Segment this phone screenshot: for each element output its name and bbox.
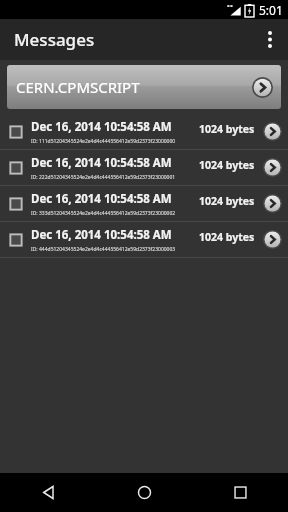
button[interactable]: Select message: [9, 161, 23, 175]
button[interactable]: More options: [252, 19, 288, 60]
staticText: ID: 333d51204345524e2e4d4c444556412e59d2…: [31, 210, 176, 217]
staticText: 1024 bytes: [199, 158, 255, 172]
button[interactable]: CERN.CPMSCRIPT: [7, 65, 281, 109]
staticText: ID: 444d51204345524e2e4d4c444556412e59d2…: [31, 246, 176, 253]
staticText: 1024 bytes: [199, 230, 255, 244]
button[interactable]: Select message: [9, 125, 23, 139]
button[interactable]: Back: [0, 473, 96, 512]
button[interactable]: Open message: [263, 122, 282, 141]
button[interactable]: Select message: [9, 233, 23, 247]
staticText: ID: 222d51204345524e2e4d4c444556412e59d2…: [31, 174, 176, 181]
button[interactable]: Select message: [0, 186, 288, 221]
button[interactable]: Open message: [263, 194, 282, 213]
button[interactable]: Select message: [9, 197, 23, 211]
staticText: 1024 bytes: [199, 194, 255, 208]
staticText: 1024 bytes: [199, 122, 255, 136]
staticText: Dec 16, 2014 10:54:58 AM: [31, 155, 172, 171]
button[interactable]: Home: [96, 473, 192, 512]
button[interactable]: Select message: [0, 222, 288, 257]
button[interactable]: Open message: [263, 158, 282, 177]
button[interactable]: Select message: [0, 114, 288, 149]
staticText: Dec 16, 2014 10:54:58 AM: [31, 227, 172, 243]
staticText: Messages: [14, 28, 95, 51]
staticText: ID: 111d51204345524e2e4d4c444556412e59d2…: [31, 138, 176, 145]
button[interactable]: Open message: [263, 230, 282, 249]
staticText: Dec 16, 2014 10:54:58 AM: [31, 119, 172, 135]
staticText: 5:01: [259, 2, 283, 18]
button[interactable]: Recent apps: [192, 473, 288, 512]
staticText: CERN.CPMSCRIPT: [16, 77, 140, 97]
button[interactable]: Select message: [0, 150, 288, 185]
staticText: Dec 16, 2014 10:54:58 AM: [31, 191, 172, 207]
